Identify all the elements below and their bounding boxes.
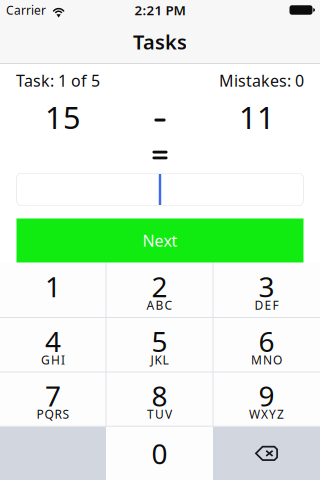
staticText: Task: 1 of 5 xyxy=(16,70,100,91)
button[interactable]: 3 xyxy=(213,263,320,318)
staticText: G H I xyxy=(41,352,65,368)
staticText: Mistakes: 0 xyxy=(219,70,304,91)
staticText: M N O xyxy=(251,352,282,368)
staticText: P Q R S xyxy=(36,406,69,422)
staticText: J K L xyxy=(150,352,168,368)
staticText: 6 xyxy=(258,323,274,360)
staticText: Tasks xyxy=(133,28,187,55)
staticText xyxy=(51,297,54,313)
staticText: Next xyxy=(142,230,177,251)
staticText: 2 xyxy=(151,268,167,305)
staticText: 8 xyxy=(151,377,167,414)
button[interactable]: 0 xyxy=(106,427,213,480)
staticText: Carrier xyxy=(6,2,46,18)
staticText: 1 xyxy=(45,268,61,305)
staticText: 2:21 PM xyxy=(134,1,185,19)
staticText: 7 xyxy=(45,377,61,414)
staticText: 9 xyxy=(258,377,274,414)
staticText: W X Y Z xyxy=(249,406,284,422)
button[interactable]: 1 xyxy=(0,263,106,318)
staticText: 3 xyxy=(258,268,274,305)
staticText: D E F xyxy=(254,297,278,313)
staticText: 5 xyxy=(151,323,167,360)
button[interactable]: Next xyxy=(16,218,303,262)
staticText: 11 xyxy=(239,97,275,137)
button[interactable]: 8 xyxy=(106,372,213,427)
staticText: 4 xyxy=(45,323,61,360)
staticText: 15 xyxy=(45,97,81,137)
staticText: A B C xyxy=(146,297,172,313)
button[interactable]: 9 xyxy=(213,372,320,427)
button[interactable]: 5 xyxy=(106,318,213,372)
button[interactable]: 2 xyxy=(106,263,213,318)
button[interactable]: 6 xyxy=(213,318,320,372)
button[interactable]: 4 xyxy=(0,318,106,372)
staticText: 0 xyxy=(151,435,167,472)
button[interactable]: Delete xyxy=(213,427,320,480)
button[interactable]: 7 xyxy=(0,372,106,427)
staticText: T U V xyxy=(147,406,172,422)
